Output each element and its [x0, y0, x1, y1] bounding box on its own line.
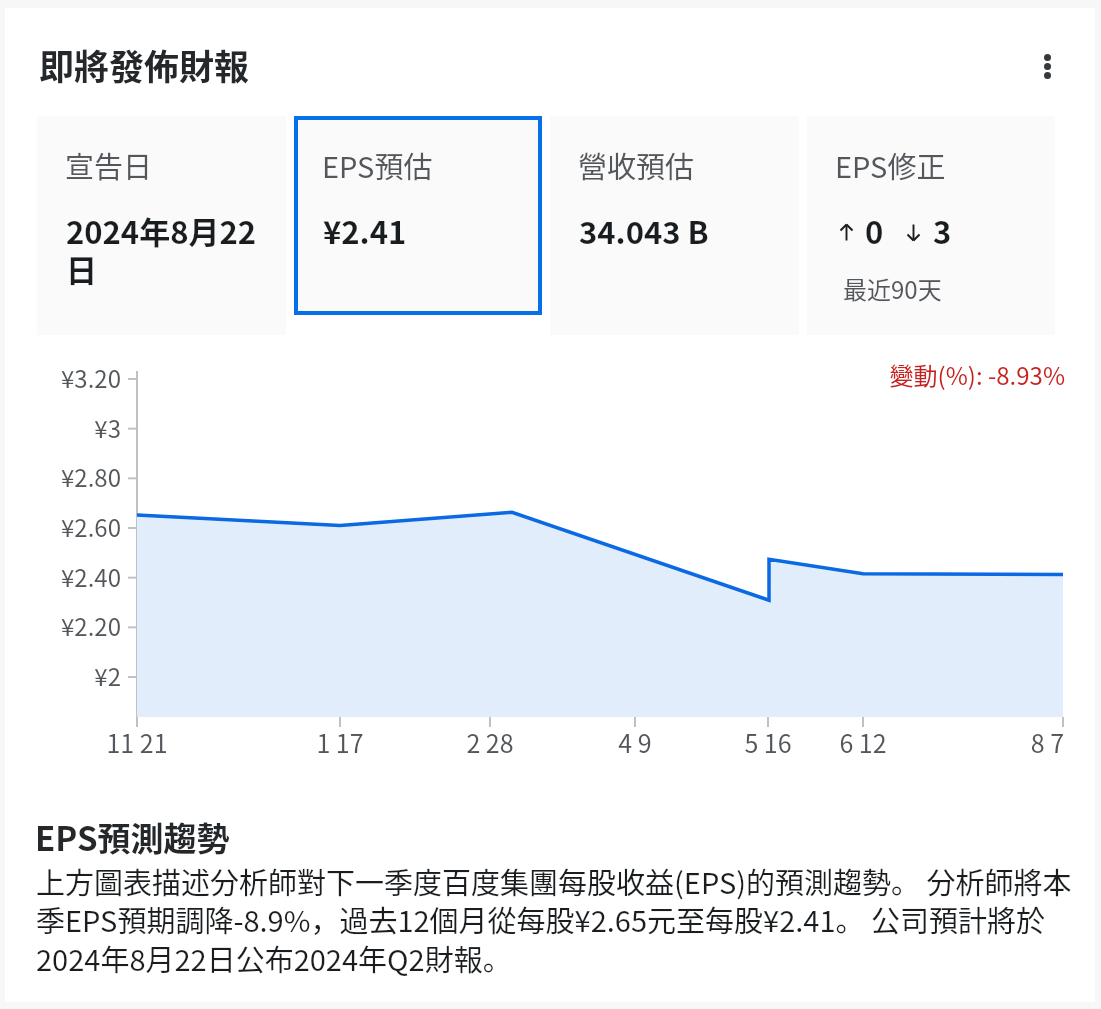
staticText: 5 16 [708, 724, 828, 760]
staticText: 宣告日 [65, 144, 153, 186]
staticText: 3 [933, 208, 952, 253]
staticText: 最近90天 [843, 271, 942, 306]
button[interactable]: More options [1024, 43, 1070, 89]
staticText: 4 9 [575, 724, 695, 760]
staticText: EPS預估 [322, 144, 433, 186]
button[interactable]: EPS預估 [294, 116, 542, 315]
staticText: 即將發佈財報 [39, 39, 250, 90]
staticText: ¥2.20 [20, 608, 121, 643]
staticText: ¥3.20 [20, 360, 121, 395]
button[interactable]: 營收預估 [550, 116, 799, 335]
staticText: EPS預測趨勢 [35, 813, 230, 861]
staticText: 變動(%): -8.93% [700, 357, 1065, 392]
staticText: 2024年8月22日 [66, 208, 274, 291]
staticText: ¥2.80 [20, 459, 121, 494]
button[interactable]: EPS修正 [807, 116, 1055, 335]
staticText: 8 7 [1004, 724, 1064, 760]
staticText: 6 12 [803, 724, 923, 760]
staticText: 1 17 [280, 724, 400, 760]
button[interactable]: 宣告日 [37, 116, 286, 335]
staticText: 11 21 [77, 724, 197, 760]
staticText: ¥2.41 [323, 208, 530, 253]
staticText: 2 28 [430, 724, 550, 760]
staticText: ¥2.40 [20, 559, 121, 594]
staticText: ¥2.60 [20, 509, 121, 544]
staticText: EPS修正 [835, 144, 946, 186]
staticText: 0 [865, 208, 884, 253]
staticText: 上方圖表描述分析師對下一季度百度集團每股收益(EPS)的預測趨勢。 分析師將本季… [36, 860, 1072, 980]
staticText: ¥3 [20, 410, 121, 445]
staticText: 34.043 B [579, 208, 787, 253]
staticText: 營收預估 [578, 144, 695, 186]
staticText: ¥2 [20, 658, 121, 693]
